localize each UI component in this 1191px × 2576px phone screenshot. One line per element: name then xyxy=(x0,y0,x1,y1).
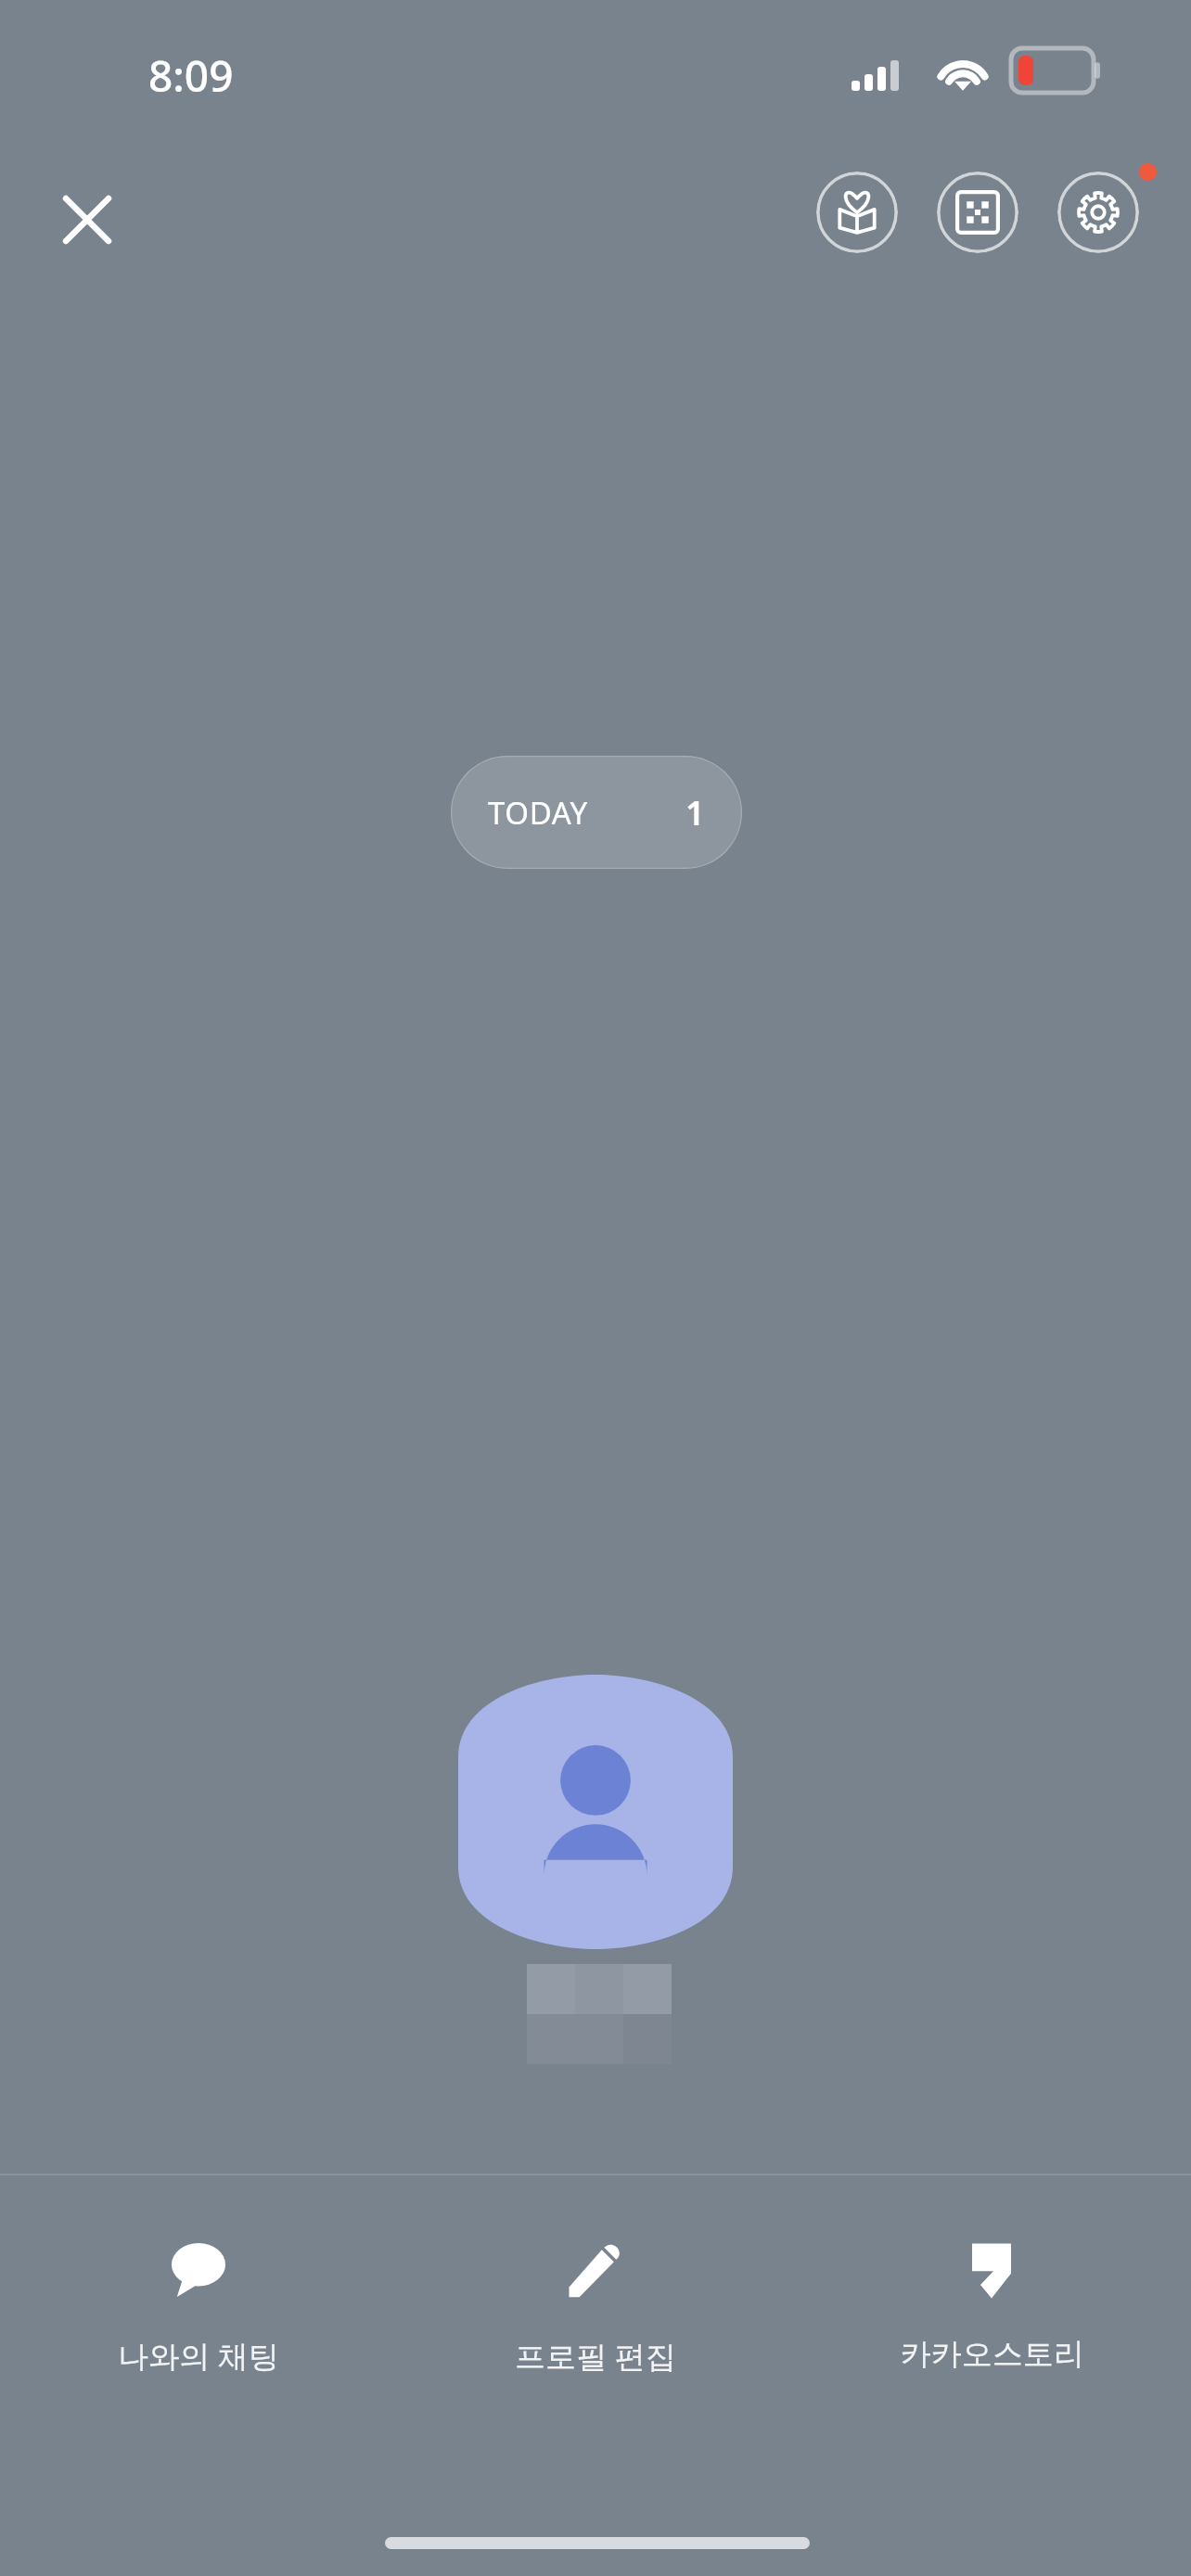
button[interactable]: Gift xyxy=(816,172,898,253)
staticText: 프로필 편집 xyxy=(515,2335,676,2377)
staticText: 나와의 채팅 xyxy=(118,2335,279,2377)
staticText: 8:09 xyxy=(148,46,234,105)
button[interactable]: Settings xyxy=(1057,172,1139,253)
button[interactable]: QR code xyxy=(937,172,1018,253)
staticText: 1 xyxy=(685,790,705,835)
button[interactable]: 나와의 채팅 xyxy=(0,2229,397,2442)
button[interactable]: Close xyxy=(39,172,135,268)
button[interactable]: Profile photo xyxy=(458,1675,733,1949)
staticText: TODAY xyxy=(488,792,588,834)
button[interactable]: 카카오스토리 xyxy=(794,2229,1191,2442)
button[interactable]: 프로필 편집 xyxy=(397,2229,794,2442)
staticText: 카카오스토리 xyxy=(901,2335,1084,2374)
button[interactable]: TODAY xyxy=(451,756,742,869)
